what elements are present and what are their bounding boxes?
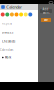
staticText: Calendar [6, 4, 22, 10]
staticText: Add Event [42, 7, 49, 15]
staticText: Save [43, 18, 48, 22]
staticText: Work [5, 56, 11, 59]
staticText: Invitees [2, 31, 13, 34]
staticText: Checklists [2, 40, 15, 43]
staticText: Calendars [0, 48, 13, 52]
staticText: Repeat [2, 22, 12, 25]
